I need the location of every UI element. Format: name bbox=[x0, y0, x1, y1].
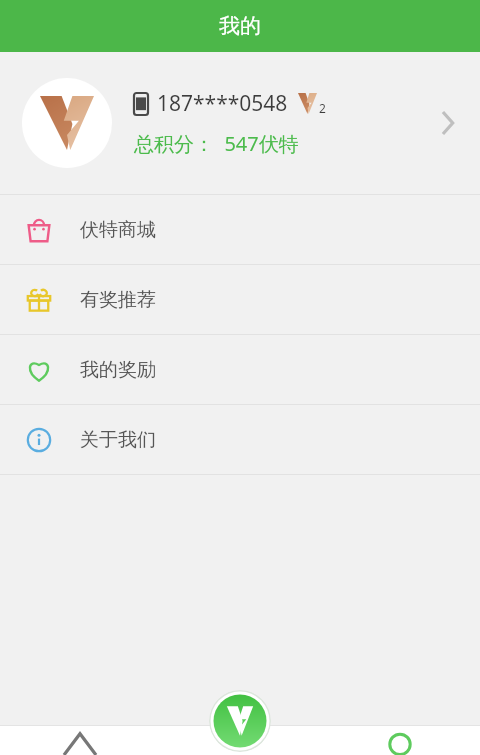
staticText: 2 bbox=[319, 100, 326, 116]
staticText: 187****0548 bbox=[157, 89, 288, 118]
button[interactable]: 我的奖励 bbox=[0, 335, 480, 404]
button[interactable]: Volt action bbox=[209, 690, 271, 752]
button[interactable]: 伏特商城 bbox=[0, 195, 480, 264]
staticText: 有奖推荐 bbox=[80, 288, 156, 312]
staticText: 我的 bbox=[219, 13, 261, 39]
staticText: 总积分： 547伏特 bbox=[134, 130, 299, 157]
button[interactable]: 关于我们 bbox=[0, 405, 480, 474]
button[interactable]: Home bbox=[0, 725, 160, 755]
button[interactable]: Profile bbox=[320, 725, 480, 755]
other: Open profile details bbox=[432, 108, 462, 138]
button[interactable]: 有奖推荐 bbox=[0, 265, 480, 334]
button[interactable]: 187****0548 bbox=[0, 52, 480, 194]
staticText: 关于我们 bbox=[80, 428, 156, 452]
staticText: 伏特商城 bbox=[80, 218, 156, 242]
staticText: 我的奖励 bbox=[80, 358, 156, 382]
